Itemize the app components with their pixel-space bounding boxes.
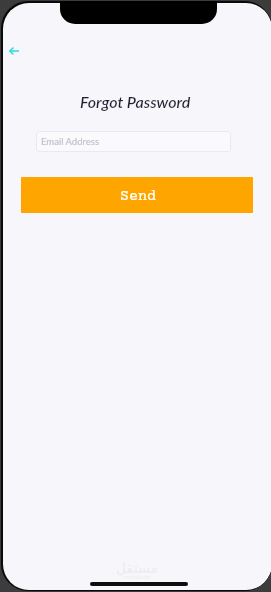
staticText: Send [120,188,156,205]
button[interactable]: Send [21,177,253,213]
staticText: Email Address [41,136,99,147]
staticText: مستقل [116,560,158,576]
button[interactable]: Email Address [36,131,231,152]
staticText: Forgot Password [80,92,191,111]
button[interactable]: Back [3,37,28,65]
